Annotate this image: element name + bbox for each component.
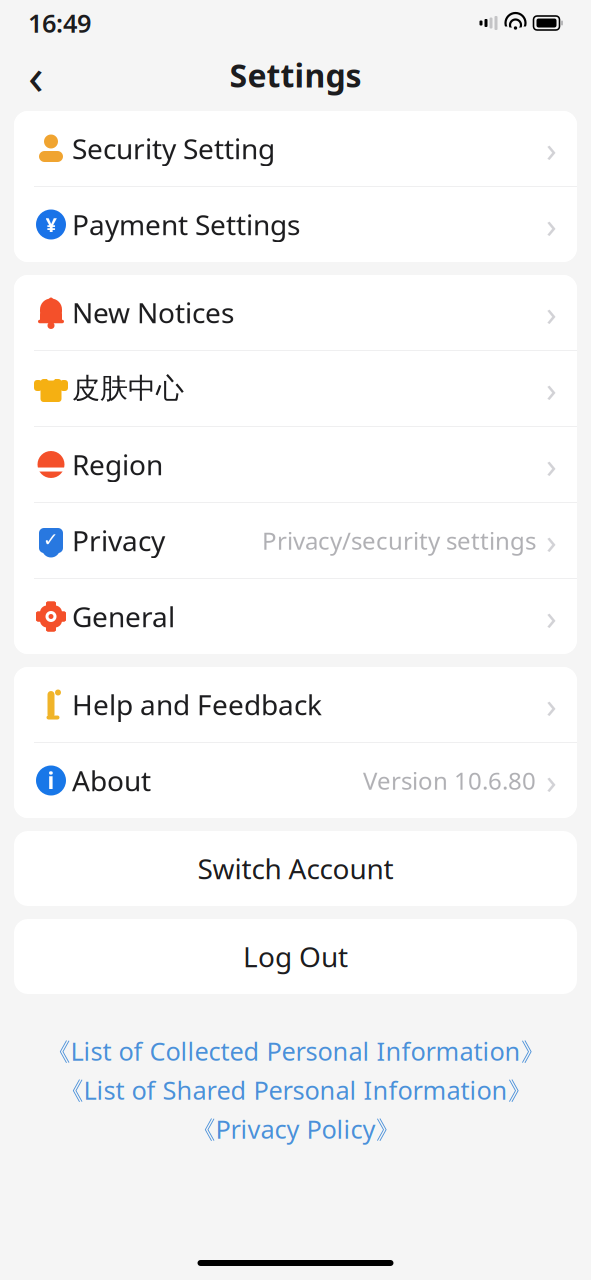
staticText: › [546, 757, 557, 803]
staticText: General [72, 598, 175, 635]
staticText: Settings [229, 54, 361, 96]
staticText: › [546, 289, 557, 335]
staticText: i [47, 765, 54, 795]
staticText: › [546, 125, 557, 171]
staticText: Privacy/security settings [262, 525, 536, 556]
staticText: Region [72, 446, 163, 483]
staticText: › [546, 517, 557, 563]
staticText: Payment Settings [72, 206, 300, 243]
staticText: ‹ [28, 41, 44, 109]
button[interactable]: Log Out [14, 919, 577, 994]
staticText: 16:49 [28, 6, 91, 40]
staticText: › [546, 441, 557, 487]
staticText: › [546, 201, 557, 247]
staticText: › [546, 681, 557, 727]
button[interactable]: ¥ [14, 187, 577, 262]
button[interactable]: General [14, 579, 577, 654]
button[interactable]: Security Setting [14, 111, 577, 186]
staticText: 《List of Shared Personal Information》 [58, 1073, 532, 1107]
button[interactable]: 皮肤中心 [14, 351, 577, 426]
staticText: Help and Feedback [72, 686, 322, 723]
staticText: About [72, 762, 151, 799]
staticText: 《List of Collected Personal Information》 [45, 1034, 545, 1068]
button[interactable]: 《List of Shared Personal Information》 [58, 1071, 532, 1109]
staticText: › [546, 365, 557, 411]
staticText: Log Out [243, 938, 348, 975]
staticText: New Notices [72, 294, 234, 331]
button[interactable]: 《List of Collected Personal Information》 [45, 1032, 545, 1070]
staticText: Privacy [72, 522, 165, 559]
button[interactable]: New Notices [14, 275, 577, 350]
button[interactable]: Switch Account [14, 831, 577, 906]
button[interactable]: 《Privacy Policy》 [190, 1110, 400, 1148]
staticText: Switch Account [197, 850, 393, 887]
staticText: Version 10.6.80 [363, 765, 536, 796]
staticText: 皮肤中心 [72, 371, 184, 406]
staticText: 《Privacy Policy》 [190, 1112, 400, 1146]
button[interactable]: ✓ [14, 503, 577, 578]
button[interactable]: Help and Feedback [14, 667, 577, 742]
button[interactable]: Region [14, 427, 577, 502]
button[interactable]: Back [12, 51, 60, 99]
staticText: Security Setting [72, 130, 275, 167]
staticText: ✓ [43, 529, 59, 550]
staticText: ¥ [45, 211, 56, 238]
button[interactable]: i [14, 743, 577, 818]
staticText: › [546, 593, 557, 639]
